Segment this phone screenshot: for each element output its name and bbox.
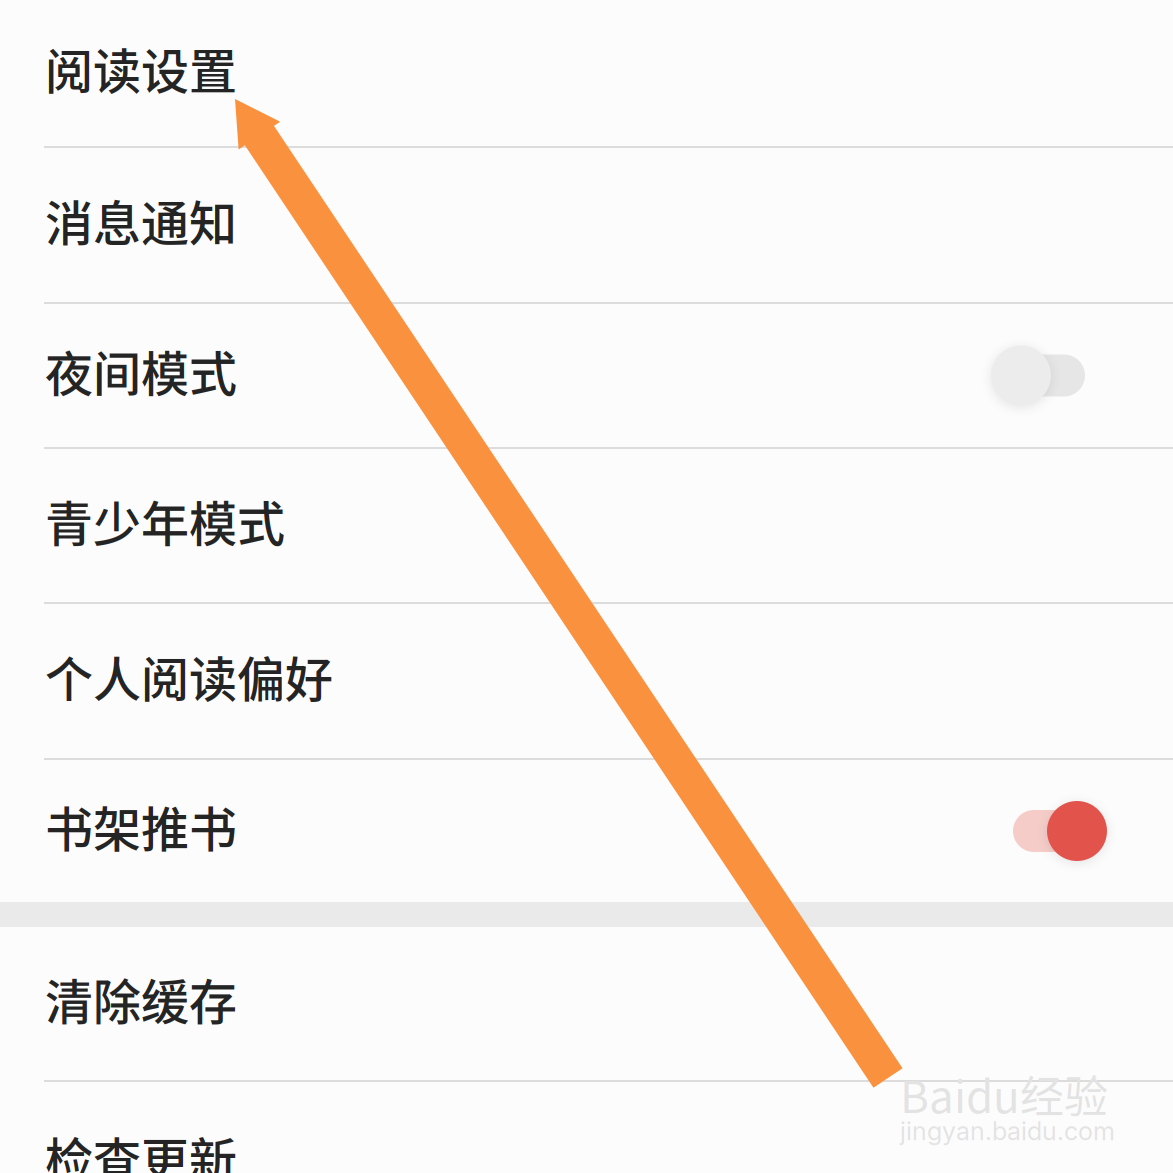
staticText: Baidu经验 — [900, 1062, 1108, 1126]
button[interactable]: 夜间模式 — [0, 304, 1173, 447]
button[interactable]: 检查更新 — [0, 1082, 1173, 1173]
button[interactable]: 消息通知 — [0, 148, 1173, 302]
button[interactable]: 青少年模式 — [0, 449, 1173, 602]
staticText: 消息通知 — [45, 185, 237, 255]
button[interactable]: 阅读设置 — [0, 0, 1173, 146]
staticText: 书架推书 — [45, 791, 237, 861]
button[interactable]: 个人阅读偏好 — [0, 604, 1173, 758]
staticText: 清除缓存 — [45, 964, 237, 1033]
staticText: 夜间模式 — [45, 336, 237, 405]
staticText: 检查更新 — [45, 1122, 237, 1173]
staticText: 阅读设置 — [45, 33, 237, 103]
button[interactable]: 清除缓存 — [0, 927, 1173, 1080]
staticText: 个人阅读偏好 — [45, 641, 333, 711]
button[interactable]: 书架推书 — [0, 760, 1173, 902]
staticText: jingyan.baidu.com — [900, 1116, 1115, 1146]
staticText: 青少年模式 — [45, 486, 285, 555]
